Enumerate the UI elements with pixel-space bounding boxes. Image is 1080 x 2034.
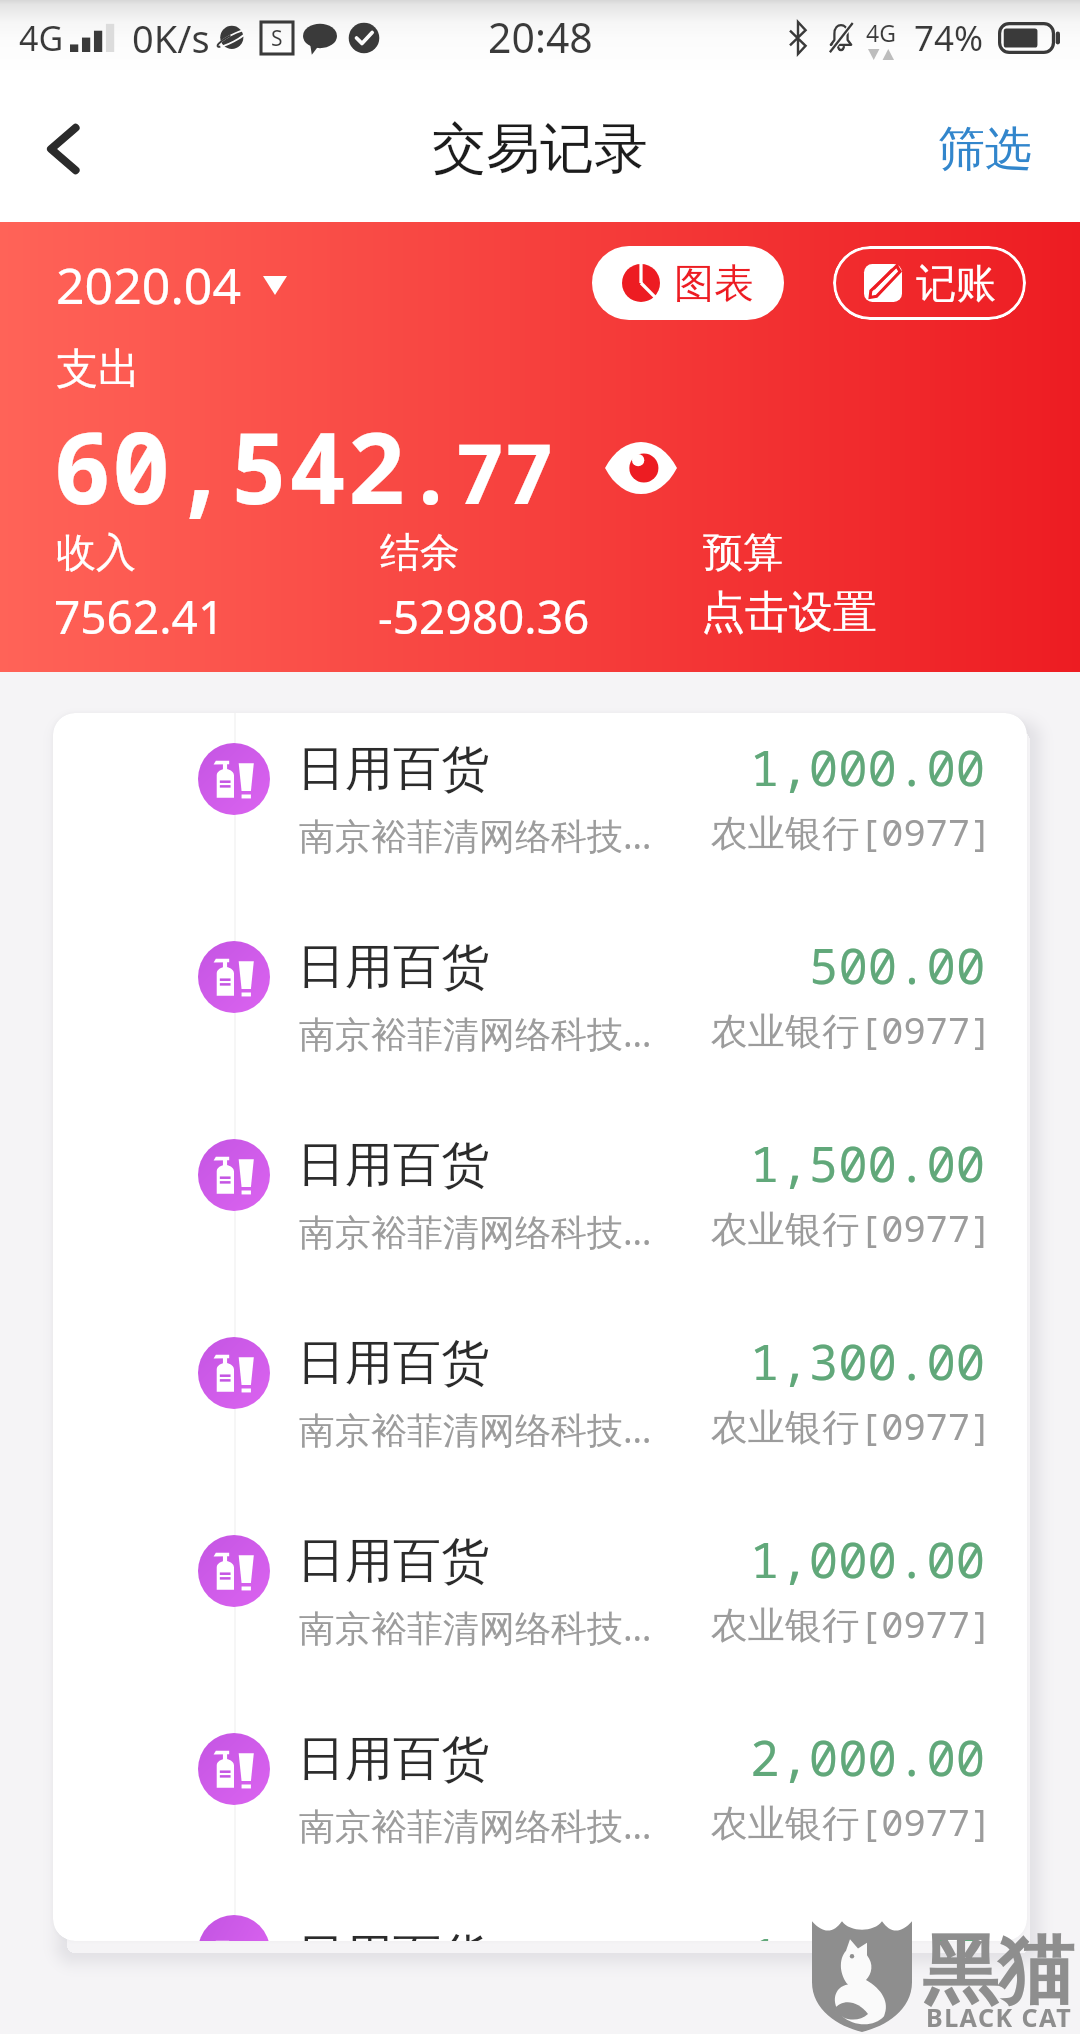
staticText: 1,000.00 xyxy=(750,1922,986,1941)
staticText: 60,542 xyxy=(53,399,406,532)
button[interactable]: 日用百货 xyxy=(53,1505,1027,1703)
staticText: .77 xyxy=(406,416,554,528)
staticText: 点击设置 xyxy=(701,585,877,640)
button[interactable]: 预算 xyxy=(703,527,1003,657)
staticText: 南京裕菲清网络科技… xyxy=(299,1207,652,1256)
staticText: 日用百货 xyxy=(297,1729,489,1789)
staticText: -52980.36 xyxy=(378,585,590,648)
button[interactable]: 2020.04 xyxy=(56,251,287,319)
staticText: 收入 xyxy=(56,527,136,577)
button[interactable]: 日用百货 xyxy=(53,1307,1027,1505)
staticText: 日用百货 xyxy=(297,1135,489,1195)
staticText: 74% xyxy=(914,14,984,62)
staticText: 交易记录 xyxy=(432,115,648,183)
button[interactable]: 日用百货 xyxy=(53,1901,1027,1941)
staticText: 20:48 xyxy=(488,9,593,65)
staticText: 1,300.00 xyxy=(750,1328,986,1395)
staticText: 预算 xyxy=(703,527,783,577)
staticText: 记账 xyxy=(916,258,996,308)
staticText: 南京裕菲清网络科技… xyxy=(299,1009,652,1058)
button[interactable]: 图表 xyxy=(592,246,784,320)
button[interactable]: 日用百货 xyxy=(53,713,1027,911)
staticText: 图表 xyxy=(674,258,754,308)
staticText: 4G xyxy=(866,17,896,48)
staticText: 日用百货 xyxy=(297,739,489,799)
staticText: 日用百货 xyxy=(297,1927,489,1941)
staticText: 7562.41 xyxy=(54,585,225,648)
staticText: 黑猫 xyxy=(922,1923,1074,2019)
button[interactable]: 日用百货 xyxy=(53,1109,1027,1307)
staticText: 2020.04 xyxy=(56,251,241,319)
staticText: 0K/s xyxy=(132,12,210,64)
staticText: 农业银行[0977] xyxy=(711,1202,993,1253)
button[interactable]: Back xyxy=(23,109,103,189)
staticText: 南京裕菲清网络科技… xyxy=(299,1603,652,1652)
staticText: 日用百货 xyxy=(297,1333,489,1393)
staticText: 南京裕菲清网络科技… xyxy=(299,1405,652,1454)
staticText: 结余 xyxy=(380,527,460,577)
staticText: 1,000.00 xyxy=(750,1526,986,1593)
staticText: 农业银行[0977] xyxy=(711,1400,993,1451)
staticText: 农业银行[0977] xyxy=(711,1004,993,1055)
staticText: S xyxy=(271,24,283,53)
staticText: 南京裕菲清网络科技… xyxy=(299,1801,652,1850)
button[interactable]: Toggle amount visibility xyxy=(605,440,677,496)
staticText: 日用百货 xyxy=(297,937,489,997)
staticText: 筛选 xyxy=(938,120,1032,179)
staticText: 2,000.00 xyxy=(750,1724,986,1791)
staticText: 1,000.00 xyxy=(750,734,986,801)
staticText: 4G xyxy=(19,15,64,61)
button[interactable]: 日用百货 xyxy=(53,1703,1027,1901)
button[interactable]: 记账 xyxy=(833,246,1026,320)
staticText: 农业银行[0977] xyxy=(711,1796,993,1847)
staticText: 1,500.00 xyxy=(750,1130,986,1197)
staticText: 500.00 xyxy=(809,932,986,999)
button[interactable]: 筛选 xyxy=(918,104,1052,195)
button[interactable]: 日用百货 xyxy=(53,911,1027,1109)
staticText: 南京裕菲清网络科技… xyxy=(299,811,652,860)
staticText: 日用百货 xyxy=(297,1531,489,1591)
staticText: BLACK CAT xyxy=(926,2000,1073,2034)
staticText: 农业银行[0977] xyxy=(711,1598,993,1649)
staticText: 农业银行[0977] xyxy=(711,806,993,857)
button[interactable]: 结余 xyxy=(380,527,680,657)
button[interactable]: 收入 xyxy=(56,527,356,657)
staticText: 支出 xyxy=(56,343,140,396)
